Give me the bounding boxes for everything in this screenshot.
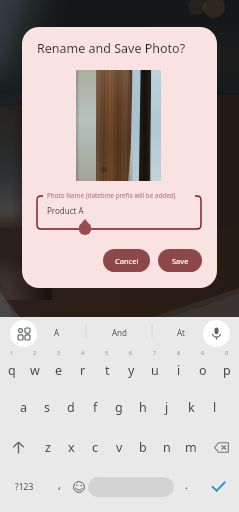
button[interactable]: 3 — [47, 347, 71, 387]
button[interactable]: x — [59, 427, 83, 467]
staticText: Rename and Save Photo? — [37, 40, 186, 57]
staticText: l — [213, 399, 217, 416]
button[interactable]: Open apps — [10, 320, 37, 347]
staticText: o — [199, 362, 207, 379]
staticText: p — [223, 362, 231, 379]
button[interactable]: s — [35, 387, 59, 427]
button[interactable]: Cancel — [103, 249, 150, 272]
button[interactable]: 0 — [215, 347, 239, 387]
staticText: w — [30, 362, 40, 379]
button[interactable]: j — [155, 387, 179, 427]
staticText: q — [8, 362, 16, 379]
button[interactable]: , — [48, 467, 70, 512]
button[interactable]: v — [107, 427, 131, 467]
button[interactable]: 4 — [71, 347, 95, 387]
staticText: t — [105, 362, 110, 379]
staticText: ?123 — [15, 481, 34, 493]
button[interactable]: 8 — [167, 347, 191, 387]
staticText: z — [45, 439, 51, 456]
staticText: 8 — [177, 349, 181, 356]
staticText: 2 — [33, 349, 37, 356]
button[interactable] — [37, 196, 201, 229]
button[interactable]: m — [179, 427, 203, 467]
button[interactable]: f — [83, 387, 107, 427]
button[interactable]: Backspace — [203, 427, 239, 467]
staticText: d — [67, 399, 75, 416]
staticText: f — [93, 399, 98, 416]
button[interactable]: . — [174, 467, 198, 512]
button[interactable]: g — [107, 387, 131, 427]
staticText: At — [177, 327, 185, 338]
staticText: x — [68, 439, 75, 456]
button[interactable]: 6 — [119, 347, 143, 387]
button[interactable]: Space — [88, 477, 174, 497]
button[interactable]: Emoji — [70, 467, 88, 512]
staticText: 1 — [10, 349, 14, 356]
staticText: r — [80, 362, 86, 379]
staticText: Product A — [47, 205, 84, 216]
staticText: 7 — [153, 349, 157, 356]
staticText: g — [115, 399, 123, 416]
staticText: 6 — [129, 349, 133, 356]
staticText: 9 — [201, 349, 205, 356]
staticText: 3 — [57, 349, 61, 356]
button[interactable]: b — [131, 427, 155, 467]
staticText: e — [55, 362, 63, 379]
button[interactable]: 2 — [23, 347, 47, 387]
staticText: Photo Name (datetime prefix will be adde… — [47, 191, 176, 200]
button[interactable]: At — [150, 317, 212, 348]
staticText: A — [54, 327, 60, 338]
button[interactable]: 5 — [95, 347, 119, 387]
staticText: n — [163, 439, 171, 456]
staticText: i — [177, 362, 181, 379]
staticText: m — [185, 439, 197, 456]
staticText: 5 — [105, 349, 109, 356]
staticText: a — [20, 399, 28, 416]
staticText: u — [151, 362, 159, 379]
staticText: . — [185, 477, 188, 492]
button[interactable]: z — [36, 427, 59, 467]
button[interactable]: c — [83, 427, 107, 467]
button[interactable]: 7 — [143, 347, 167, 387]
staticText: j — [165, 399, 169, 416]
staticText: b — [139, 439, 147, 456]
button[interactable]: h — [131, 387, 155, 427]
button[interactable]: And — [88, 317, 150, 348]
button[interactable]: d — [59, 387, 83, 427]
staticText: Cancel — [115, 256, 139, 266]
staticText: y — [128, 362, 135, 379]
staticText: 0 — [225, 349, 229, 356]
button[interactable]: 9 — [191, 347, 215, 387]
button[interactable]: Voice input — [203, 320, 230, 347]
button[interactable]: Enter — [198, 467, 239, 512]
staticText: Save — [172, 256, 189, 266]
button[interactable]: a — [12, 387, 35, 427]
button[interactable]: ?123 — [0, 467, 48, 512]
staticText: v — [116, 439, 123, 456]
staticText: c — [92, 439, 99, 456]
button[interactable]: A — [26, 317, 88, 348]
button[interactable]: Save — [158, 249, 202, 272]
staticText: And — [112, 327, 127, 338]
staticText: k — [188, 399, 195, 416]
button[interactable]: k — [179, 387, 203, 427]
button[interactable]: Shift — [0, 427, 36, 467]
staticText: , — [58, 477, 61, 492]
staticText: s — [44, 399, 50, 416]
button[interactable]: 1 — [0, 347, 23, 387]
button[interactable]: l — [203, 387, 227, 427]
staticText: h — [139, 399, 147, 416]
button[interactable]: n — [155, 427, 179, 467]
staticText: 4 — [81, 349, 85, 356]
